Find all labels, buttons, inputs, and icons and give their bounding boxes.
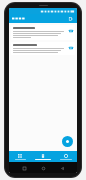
- button[interactable]: Recents: [20, 164, 28, 172]
- button[interactable]: Open report: [11, 25, 75, 40]
- button[interactable]: Settings: [54, 151, 77, 162]
- button[interactable]: Sign out: [68, 16, 74, 22]
- button[interactable]: Back: [58, 164, 66, 172]
- button[interactable]: Open report: [68, 28, 73, 33]
- button[interactable]: Open report: [68, 45, 73, 50]
- button[interactable]: Home: [9, 151, 31, 162]
- button[interactable]: Open report: [11, 42, 75, 55]
- button[interactable]: Home: [39, 164, 47, 172]
- button[interactable]: New report: [62, 136, 73, 147]
- button[interactable]: Submitted: [31, 151, 54, 162]
